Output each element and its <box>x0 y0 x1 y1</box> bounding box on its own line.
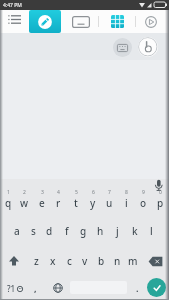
button[interactable] <box>139 11 162 32</box>
button[interactable]: 4 <box>50 188 67 210</box>
button[interactable] <box>141 252 169 270</box>
button[interactable]: 6 <box>84 188 101 210</box>
button[interactable] <box>29 10 61 33</box>
button[interactable]: 8 <box>118 188 135 210</box>
staticText: z <box>34 254 39 268</box>
button[interactable]: z <box>28 252 45 270</box>
staticText: a <box>14 224 20 238</box>
button[interactable] <box>4 11 26 32</box>
staticText: l <box>150 224 153 238</box>
button[interactable] <box>0 252 28 270</box>
button[interactable]: ?1 <box>2 278 28 298</box>
button[interactable]: v <box>77 252 93 270</box>
staticText: n <box>114 254 121 268</box>
staticText: f <box>65 224 69 238</box>
button[interactable]: 9 <box>135 188 152 210</box>
staticText: i <box>125 196 128 210</box>
button[interactable] <box>69 11 93 32</box>
button[interactable]: g <box>75 222 92 240</box>
staticText: ?1 <box>7 283 16 294</box>
staticText: p <box>157 196 164 210</box>
button[interactable]: 2 <box>16 188 33 210</box>
button[interactable]: j <box>109 222 126 240</box>
staticText: m <box>128 254 138 268</box>
button[interactable]: h <box>92 222 109 240</box>
button[interactable]: k <box>126 222 143 240</box>
button[interactable]: n <box>109 252 125 270</box>
staticText: s <box>31 224 36 238</box>
button[interactable]: f <box>58 222 75 240</box>
staticText: t <box>74 196 78 210</box>
button[interactable]: l <box>143 222 160 240</box>
staticText: b <box>98 254 105 268</box>
button[interactable]: m <box>125 252 141 270</box>
staticText: g <box>80 224 87 238</box>
staticText: r <box>56 196 61 210</box>
staticText: 8 <box>125 189 128 196</box>
staticText: k <box>132 224 138 238</box>
staticText: w <box>20 196 29 210</box>
staticText: x <box>50 254 56 268</box>
button[interactable] <box>113 38 132 57</box>
staticText: 9 <box>142 189 145 196</box>
staticText: 0 <box>159 189 162 196</box>
staticText: q <box>5 196 12 210</box>
button[interactable] <box>147 278 166 297</box>
button[interactable]: 7 <box>101 188 118 210</box>
staticText: c <box>67 254 72 268</box>
staticText: y <box>90 196 96 210</box>
staticText: 1 <box>7 189 10 196</box>
button[interactable]: 1 <box>0 188 16 210</box>
staticText: 2 <box>23 189 26 196</box>
staticText: d <box>46 224 53 238</box>
button[interactable]: 3 <box>33 188 50 210</box>
button[interactable]: d <box>41 222 58 240</box>
button[interactable]: 5 <box>67 188 84 210</box>
button[interactable] <box>138 37 158 57</box>
staticText: o <box>140 196 147 210</box>
staticText: u <box>106 196 113 210</box>
button[interactable]: . <box>131 278 143 298</box>
staticText: 4:47 PM <box>3 2 22 9</box>
staticText: j <box>116 224 119 238</box>
staticText: v <box>82 254 88 268</box>
button[interactable] <box>104 11 130 32</box>
button[interactable]: , <box>29 278 41 298</box>
staticText: 6 <box>92 189 95 196</box>
staticText: h <box>97 224 104 238</box>
staticText: 4 <box>57 189 60 196</box>
button[interactable]: 0 <box>152 188 169 210</box>
button[interactable]: x <box>45 252 61 270</box>
button[interactable]: s <box>25 222 41 240</box>
button[interactable]: b <box>93 252 109 270</box>
staticText: , <box>34 282 37 294</box>
button[interactable] <box>48 278 68 298</box>
staticText: 5 <box>75 189 78 196</box>
staticText: 7 <box>108 189 111 196</box>
button[interactable]: c <box>61 252 77 270</box>
staticText: . <box>136 282 139 294</box>
staticText: 3 <box>41 189 44 196</box>
button[interactable]: a <box>9 222 25 240</box>
staticText: e <box>39 196 45 210</box>
